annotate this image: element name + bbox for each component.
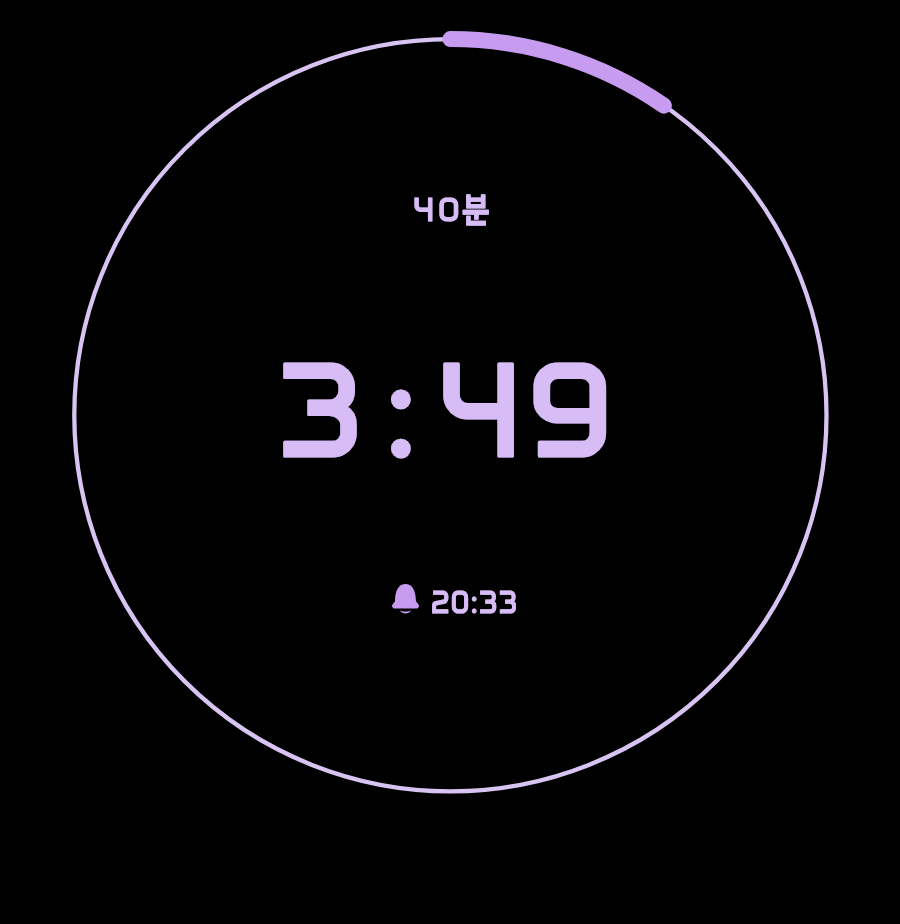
staticText: 40 [413,189,464,229]
staticText: 20:33 [431,582,519,621]
staticText: 40 [413,189,464,229]
button[interactable]: Remaining 3 minutes 49 seconds [277,329,613,490]
staticText: 분 [462,196,490,230]
staticText: 3:49 [277,329,613,490]
staticText: 20:33 [431,582,519,621]
button[interactable]: Alarm at 20:33 [392,585,533,624]
staticText: 분 [462,196,490,230]
button[interactable]: Timer preset 40 minutes [413,189,499,229]
staticText: 3:49 [277,329,613,490]
